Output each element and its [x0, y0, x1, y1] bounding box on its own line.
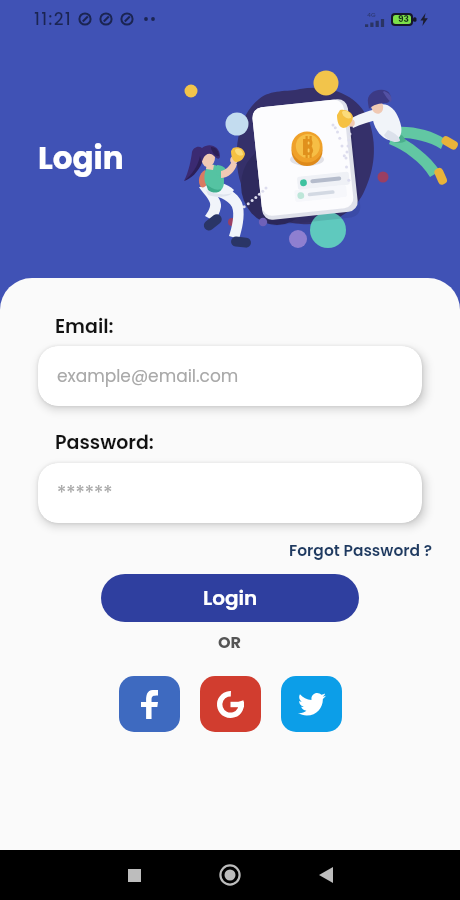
button[interactable]: ******: [38, 463, 422, 523]
button[interactable]: Back: [304, 853, 348, 897]
staticText: ******: [57, 480, 113, 507]
staticText: Forgot Password ?: [289, 540, 433, 562]
staticText: 4G: [367, 11, 376, 19]
staticText: 11:21: [34, 7, 72, 31]
button[interactable]: example@email.com: [38, 346, 422, 406]
button[interactable]: Sign in with Facebook: [119, 676, 180, 732]
button[interactable]: Home: [208, 853, 252, 897]
button[interactable]: Forgot Password ?: [289, 537, 460, 565]
button[interactable]: Recent apps: [112, 853, 156, 897]
button[interactable]: Sign in with Twitter: [281, 676, 342, 732]
staticText: Login: [203, 584, 258, 612]
button[interactable]: Sign in with Google: [200, 676, 261, 732]
staticText: 93: [398, 13, 409, 26]
staticText: Email:: [55, 313, 114, 340]
staticText: example@email.com: [57, 364, 239, 388]
button[interactable]: Login: [101, 574, 359, 622]
staticText: Login: [38, 136, 124, 179]
staticText: Password:: [55, 429, 154, 456]
staticText: OR: [218, 631, 242, 653]
